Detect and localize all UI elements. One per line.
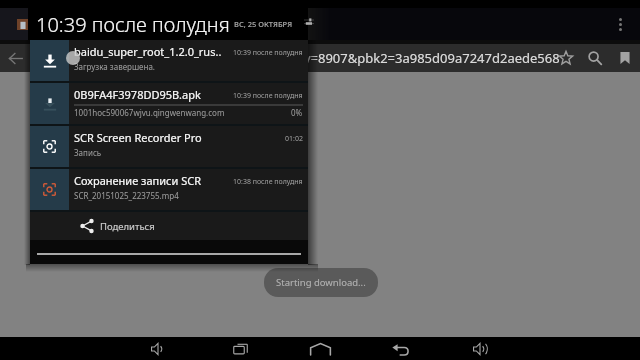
staticText: Сохранение записи SCR	[74, 173, 229, 188]
staticText: 10:38 после полудня	[233, 177, 303, 187]
button[interactable]: Starting download...	[264, 268, 378, 297]
button[interactable]: Bookmarks	[610, 44, 640, 72]
staticText: ВС, 25 ОКТЯБРЯ	[234, 19, 293, 29]
staticText: 43 %	[618, 0, 636, 10]
button[interactable]: Сохранение записи SCR	[30, 169, 308, 210]
button[interactable]: SCR Screen Recorder Pro	[30, 126, 308, 167]
button[interactable]: Home	[306, 337, 334, 360]
button[interactable]: baidu_super_root_1.2.0_rus..	[30, 40, 308, 81]
button[interactable]: Bookmark	[552, 44, 580, 72]
button[interactable]: Settings	[302, 15, 316, 29]
staticText: Загрузка завершена.	[74, 61, 303, 72]
staticText: 10:39 после полудня	[233, 91, 303, 101]
staticText: Запись	[74, 147, 303, 158]
button[interactable]: Volume down	[144, 337, 172, 360]
button[interactable]: More options	[610, 14, 630, 34]
staticText: Starting download...	[276, 276, 366, 289]
button[interactable]: Back	[386, 337, 414, 360]
staticText: 10:39 после полудня	[36, 11, 230, 38]
button[interactable]: Back	[0, 44, 30, 72]
staticText: 0%	[291, 107, 303, 118]
button[interactable]: Volume up	[466, 337, 494, 360]
button[interactable]: Recents	[226, 337, 254, 360]
staticText: SCR_20151025_223755.mp4	[74, 190, 303, 201]
staticText: baidu_super_root_1.2.0_rus..	[74, 44, 229, 59]
staticText: 1001hoc590067wjvu.qingwenwang.com	[74, 107, 285, 118]
staticText: Поделиться	[100, 220, 155, 233]
staticText: …0ddm1&dit=15m&zky=8907&pbk2=3a985d09a72…	[168, 49, 560, 67]
staticText: 0B9FA4F3978DD95B.apk	[74, 87, 229, 102]
staticText: SCR Screen Recorder Pro	[74, 130, 281, 145]
staticText: 01:02	[285, 134, 303, 144]
button[interactable]: Search	[580, 44, 610, 72]
staticText: 10:39 после полудня	[233, 48, 303, 58]
button[interactable]: Поделиться	[30, 212, 308, 240]
button[interactable]: 0B9FA4F3978DD95B.apk	[30, 83, 308, 124]
